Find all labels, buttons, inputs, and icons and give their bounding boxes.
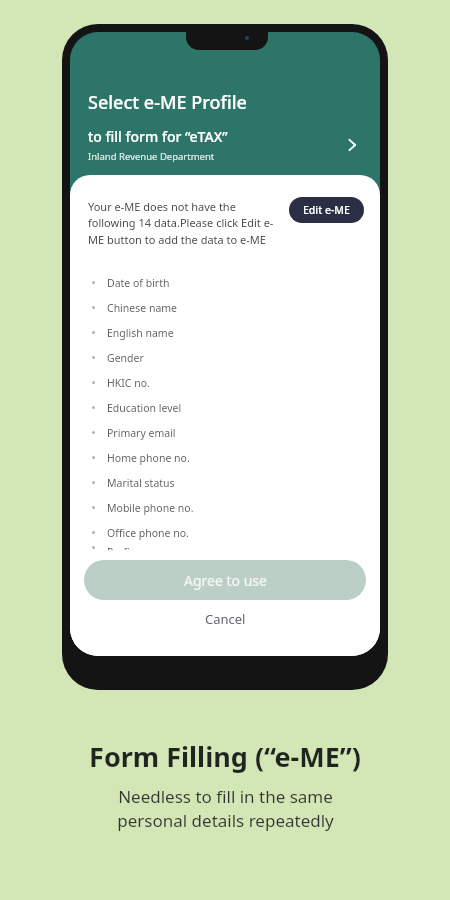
staticText: Marital status (107, 476, 175, 490)
button[interactable]: Gender (70, 345, 380, 370)
button[interactable]: Prefix (70, 545, 380, 550)
button[interactable]: Marital status (70, 470, 380, 495)
button[interactable]: Mobile phone no. (70, 495, 380, 520)
staticText: HKIC no. (107, 376, 150, 390)
button[interactable]: Edit e-ME (289, 197, 364, 223)
staticText: to fill form for “eTAX” (88, 127, 228, 146)
staticText: Primary email (107, 426, 176, 440)
button[interactable]: Primary email (70, 420, 380, 445)
staticText: Inland Revenue Department (88, 150, 215, 163)
staticText: Education level (107, 401, 182, 415)
button[interactable]: Home phone no. (70, 445, 380, 470)
other: Open profile (338, 131, 366, 159)
staticText: Gender (107, 351, 144, 365)
button[interactable]: Education level (70, 395, 380, 420)
staticText: Select e-ME Profile (88, 90, 247, 115)
staticText: Chinese name (107, 301, 178, 315)
staticText: Office phone no. (107, 526, 189, 540)
staticText: Mobile phone no. (107, 501, 194, 515)
button[interactable]: Date of birth (70, 270, 380, 295)
button[interactable]: Cancel (70, 600, 380, 638)
staticText: Form Filling (“e-ME”) (89, 738, 361, 775)
button[interactable]: to fill form for “eTAX” (88, 127, 366, 163)
staticText: Prefix (107, 545, 136, 550)
staticText: Cancel (205, 610, 246, 628)
button[interactable]: Office phone no. (70, 520, 380, 545)
staticText: Your e-ME does not have the following 14… (88, 199, 279, 248)
button[interactable]: HKIC no. (70, 370, 380, 395)
staticText: Agree to use (184, 571, 267, 590)
staticText: English name (107, 326, 174, 340)
button[interactable]: Agree to use (84, 560, 366, 600)
staticText: Home phone no. (107, 451, 190, 465)
staticText: Needless to fill in the same personal de… (117, 785, 334, 832)
staticText: Edit e-ME (303, 203, 350, 217)
button[interactable]: Chinese name (70, 295, 380, 320)
staticText: Date of birth (107, 276, 170, 290)
button[interactable]: English name (70, 320, 380, 345)
